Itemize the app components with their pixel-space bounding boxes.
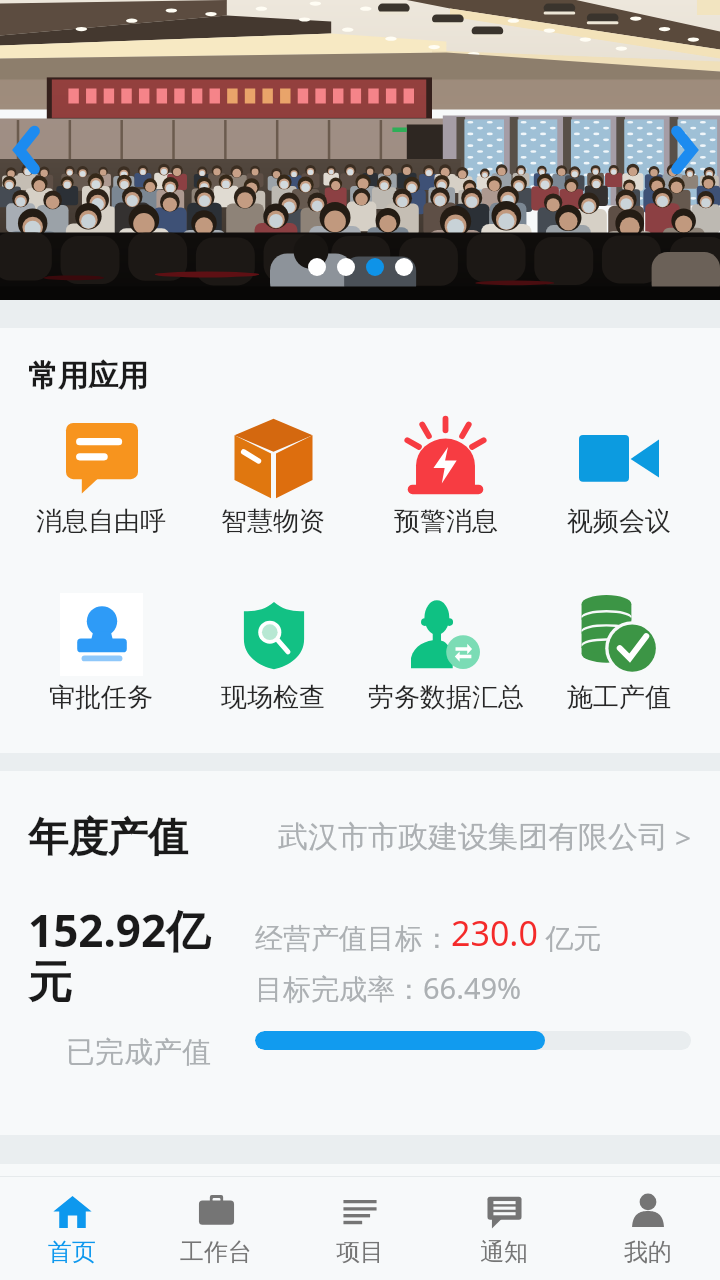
button[interactable]: 预警消息 <box>359 417 532 538</box>
button[interactable]: 首页 <box>0 1191 144 1267</box>
button[interactable]: 劳务数据汇总 <box>359 593 532 714</box>
staticText: 年度产值 <box>28 812 188 862</box>
staticText: 经营产值目标： <box>255 921 451 956</box>
staticText: 智慧物资 <box>221 505 325 538</box>
staticText: 152.92亿元 <box>28 900 216 1010</box>
button[interactable]: 项目 <box>288 1191 432 1267</box>
staticText: 已完成产值 <box>66 1034 211 1071</box>
staticText: 武汉市市政建设集团有限公司 <box>278 818 668 856</box>
staticText: 我的 <box>624 1237 672 1267</box>
button[interactable]: 我的 <box>576 1191 720 1267</box>
button[interactable] <box>337 258 355 276</box>
staticText: 劳务数据汇总 <box>368 681 524 714</box>
staticText: 通知 <box>480 1237 528 1267</box>
staticText: 常用应用 <box>28 357 148 395</box>
button[interactable]: 审批任务 <box>15 593 187 714</box>
staticText: 消息自由呼 <box>36 505 166 538</box>
button[interactable] <box>395 258 413 276</box>
button[interactable] <box>366 258 384 276</box>
staticText: 目标完成率： <box>255 972 423 1007</box>
staticText: 66.49% <box>423 968 522 1007</box>
button[interactable] <box>308 258 326 276</box>
button[interactable]: Next banner <box>657 123 711 177</box>
staticText: 施工产值 <box>567 681 671 714</box>
button[interactable]: 视频会议 <box>532 417 705 538</box>
staticText: 视频会议 <box>567 505 671 538</box>
button[interactable]: 智慧物资 <box>187 417 359 538</box>
staticText: > <box>675 818 692 856</box>
button[interactable]: 施工产值 <box>532 593 705 714</box>
button[interactable]: 工作台 <box>144 1191 288 1267</box>
staticText: 230.0 <box>451 910 538 956</box>
button[interactable]: 消息自由呼 <box>15 417 187 538</box>
staticText: 首页 <box>48 1237 96 1267</box>
button[interactable]: Previous banner <box>0 0 720 300</box>
staticText: 亿元 <box>538 918 602 956</box>
button[interactable]: 武汉市市政建设集团有限公司 <box>278 818 692 856</box>
button[interactable]: Previous banner <box>0 123 54 177</box>
button[interactable]: 通知 <box>432 1191 576 1267</box>
button[interactable]: 现场检查 <box>187 593 359 714</box>
staticText: 工作台 <box>180 1237 252 1267</box>
staticText: 预警消息 <box>394 505 498 538</box>
staticText: 审批任务 <box>49 681 153 714</box>
staticText: 现场检查 <box>221 681 325 714</box>
staticText: 项目 <box>336 1237 384 1267</box>
